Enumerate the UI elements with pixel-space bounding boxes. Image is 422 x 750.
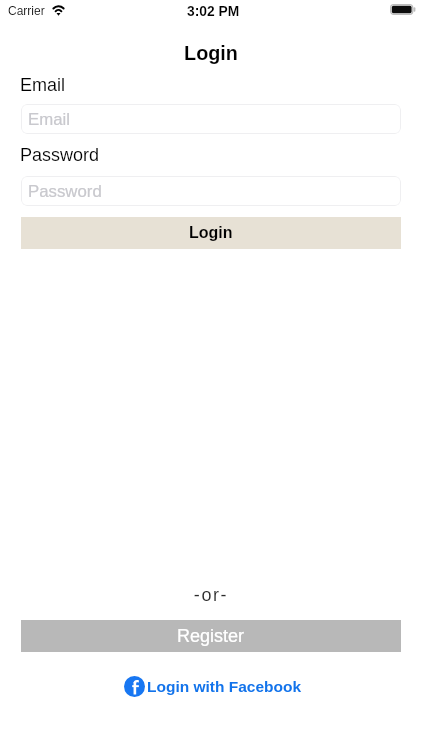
other: Battery [390, 4, 416, 15]
button[interactable]: Email [21, 104, 401, 134]
staticText: Login [0, 42, 422, 64]
staticText: Password [28, 182, 102, 201]
staticText: Password [20, 145, 100, 165]
staticText: 3:02 PM [187, 4, 240, 19]
staticText: Email [20, 75, 66, 95]
button[interactable]: Register [21, 620, 401, 652]
staticText: Login [189, 224, 233, 242]
button[interactable]: Login [21, 217, 401, 249]
button[interactable]: Password [21, 176, 401, 206]
button[interactable]: Login with Facebook [0, 676, 422, 697]
staticText: -or- [0, 585, 422, 605]
staticText: Register [177, 626, 245, 646]
staticText: Login with Facebook [147, 678, 302, 695]
staticText: Carrier [8, 4, 45, 17]
staticText: Email [28, 110, 71, 129]
